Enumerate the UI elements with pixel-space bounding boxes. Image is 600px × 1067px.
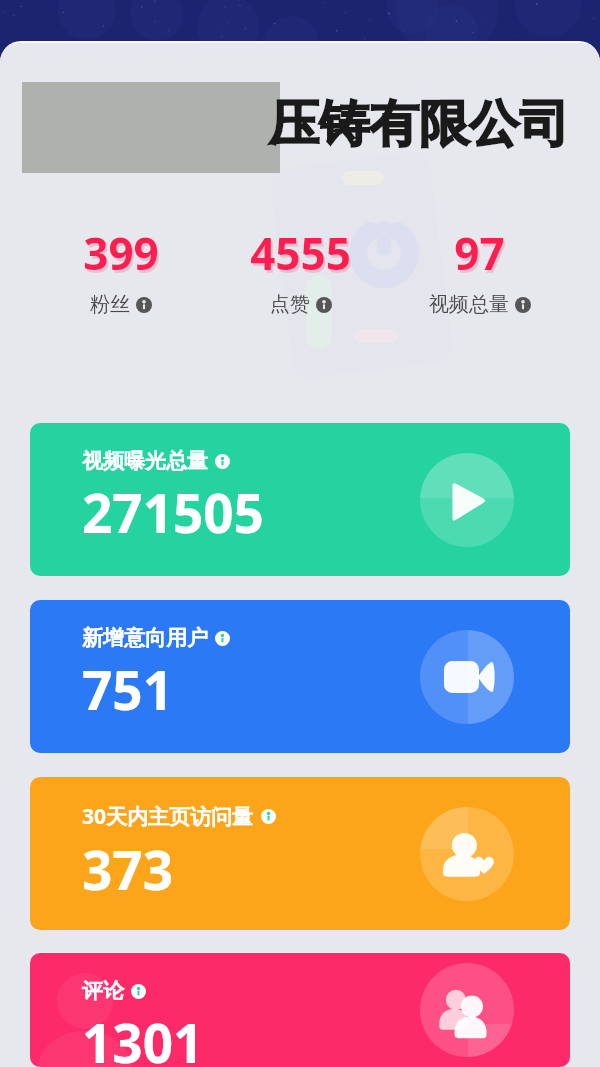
staticText: 97 <box>456 226 507 286</box>
button[interactable]: 97 <box>390 223 569 317</box>
button[interactable]: 新增意向用户 <box>30 600 570 753</box>
button[interactable]: 评论 <box>30 953 570 1067</box>
staticText: 271505 <box>82 476 264 548</box>
staticText: 399 <box>83 223 159 283</box>
staticText: 点赞 <box>270 292 310 317</box>
staticText: 751 <box>82 653 173 725</box>
button[interactable]: 30天内主页访问量 <box>30 777 570 930</box>
staticText: 4555 <box>250 223 351 283</box>
staticText: 399 <box>85 226 161 286</box>
staticText: 新增意向用户 <box>82 625 208 651</box>
staticText: 97 <box>454 223 505 283</box>
staticText: 视频总量 <box>429 292 509 317</box>
staticText: 30天内主页访问量 <box>82 802 254 831</box>
staticText: 粉丝 <box>90 292 130 317</box>
staticText: 1301 <box>82 1006 204 1067</box>
staticText: 4555 <box>252 226 353 286</box>
staticText: 评论 <box>82 978 124 1004</box>
button[interactable]: 视频曝光总量 <box>30 423 570 576</box>
staticText: 373 <box>82 833 173 905</box>
button[interactable]: 399 <box>31 223 211 317</box>
staticText: 视频曝光总量 <box>82 448 208 474</box>
button[interactable]: 4555 <box>211 223 390 317</box>
staticText: 压铸有限公司 <box>269 93 569 156</box>
